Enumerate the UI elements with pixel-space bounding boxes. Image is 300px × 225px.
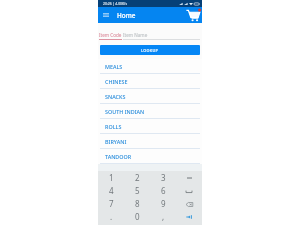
staticText: TANDOOR: [105, 153, 132, 160]
staticText: SNACKS: [105, 93, 126, 100]
staticText: 5: [135, 185, 140, 196]
button[interactable]: .: [98, 210, 124, 223]
staticText: 9: [161, 198, 166, 209]
button[interactable]: Enter: [176, 210, 202, 223]
other: Backspace: [184, 199, 194, 209]
button[interactable]: 5: [124, 184, 150, 197]
staticText: 20:26 | 4.00K/s: [103, 1, 128, 6]
staticText: 6: [161, 185, 166, 196]
button[interactable]: ROLLS: [98, 119, 202, 134]
button[interactable]: MEALS: [98, 59, 202, 74]
button[interactable]: Open navigation menu: [100, 9, 112, 21]
button[interactable]: Shopping cart: [185, 7, 201, 23]
button[interactable]: 6: [150, 184, 176, 197]
button[interactable]: LOOKUP: [100, 45, 200, 55]
button[interactable]: SOUTH INDIAN: [98, 104, 202, 119]
button[interactable]: 1: [98, 171, 124, 184]
staticText: SOUTH INDIAN: [105, 108, 145, 115]
staticText: .: [110, 211, 113, 222]
other: Minus: [184, 173, 194, 183]
staticText: 1: [109, 172, 114, 183]
button[interactable]: Item Name: [123, 32, 200, 40]
button[interactable]: BIRYANI: [98, 134, 202, 149]
button[interactable]: CHINESE: [98, 74, 202, 89]
staticText: ,: [162, 211, 165, 222]
staticText: Item Code: [99, 32, 122, 38]
staticText: 4: [109, 185, 114, 196]
staticText: CHINESE: [105, 78, 128, 85]
staticText: 2: [135, 172, 140, 183]
staticText: LOOKUP: [141, 48, 159, 53]
button[interactable]: 9: [150, 197, 176, 210]
staticText: 3: [161, 172, 166, 183]
button[interactable]: 4: [98, 184, 124, 197]
button[interactable]: 2: [124, 171, 150, 184]
button[interactable]: Item Code: [99, 32, 122, 40]
button[interactable]: 0: [124, 210, 150, 223]
staticText: BIRYANI: [105, 138, 127, 145]
staticText: Item Name: [123, 32, 148, 38]
button[interactable]: Minus: [176, 171, 202, 184]
staticText: 0: [135, 211, 140, 222]
button[interactable]: TANDOOR: [98, 149, 202, 164]
staticText: ROLLS: [105, 123, 122, 130]
staticText: Home: [117, 11, 136, 20]
button[interactable]: ,: [150, 210, 176, 223]
staticText: 7: [109, 198, 114, 209]
staticText: MEALS: [105, 63, 123, 70]
other: Space: [184, 186, 194, 196]
button[interactable]: 3: [150, 171, 176, 184]
button[interactable]: SNACKS: [98, 89, 202, 104]
button[interactable]: 7: [98, 197, 124, 210]
button[interactable]: Backspace: [176, 197, 202, 210]
button[interactable]: Space: [176, 184, 202, 197]
staticText: 8: [135, 198, 140, 209]
button[interactable]: 8: [124, 197, 150, 210]
other: Enter: [184, 212, 194, 222]
